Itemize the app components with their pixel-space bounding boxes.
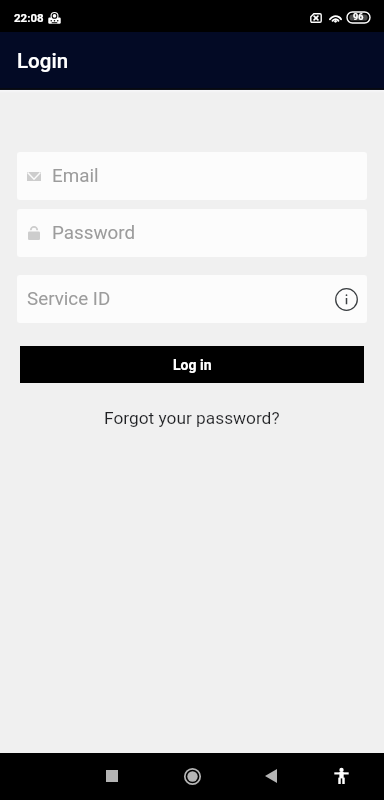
button[interactable]: Service ID info	[332, 285, 361, 314]
staticText: 96	[353, 12, 364, 23]
staticText: Service ID	[27, 288, 111, 310]
staticText: Login	[17, 49, 69, 73]
staticText: Email	[52, 165, 99, 187]
button[interactable]: Forgot your password?	[98, 405, 286, 431]
staticText: Password	[52, 222, 136, 244]
button[interactable]: Home	[169, 753, 215, 799]
button[interactable]: Accessibility	[318, 753, 364, 799]
button[interactable]: Service ID	[17, 275, 367, 323]
button[interactable]: Password	[17, 209, 367, 257]
button[interactable]: Email	[17, 152, 367, 200]
button[interactable]: Recent apps	[89, 753, 135, 799]
staticText: Log in	[173, 357, 212, 373]
staticText: 22:08	[14, 11, 44, 24]
button[interactable]: Back	[248, 753, 294, 799]
button[interactable]: Log in	[20, 346, 364, 383]
